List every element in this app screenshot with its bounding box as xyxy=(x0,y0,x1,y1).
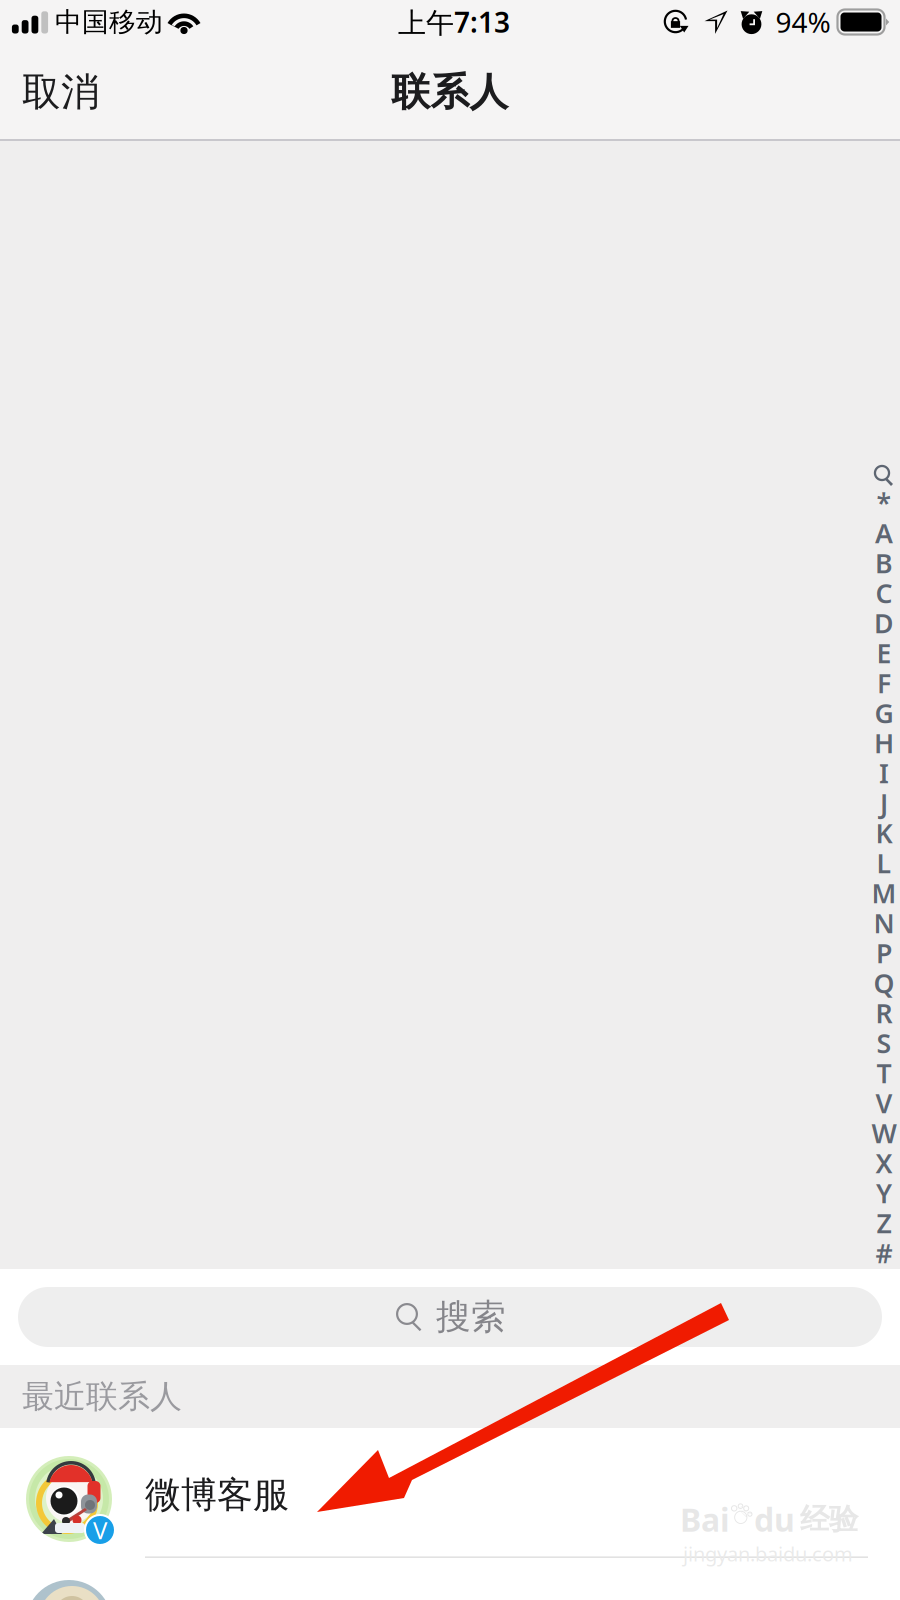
button[interactable]: Index xyxy=(871,141,900,1268)
staticText: P xyxy=(876,935,892,971)
staticText: V xyxy=(93,1514,107,1546)
staticText: 取消 xyxy=(22,68,100,116)
staticText: X xyxy=(875,1145,892,1181)
staticText: du xyxy=(754,1498,795,1540)
staticText: M xyxy=(871,875,896,911)
staticText: N xyxy=(873,905,894,941)
button[interactable]: V xyxy=(0,1428,900,1558)
staticText: J xyxy=(880,785,888,821)
staticText: * xyxy=(876,485,891,521)
staticText: R xyxy=(875,995,892,1031)
staticText: T xyxy=(876,1055,891,1091)
staticText: F xyxy=(877,665,891,701)
staticText: G xyxy=(874,695,893,731)
staticText: Z xyxy=(876,1205,891,1241)
button[interactable]: 取消 xyxy=(0,54,122,130)
staticText: 94% xyxy=(775,3,830,41)
staticText: K xyxy=(875,815,892,851)
staticText: # xyxy=(875,1235,892,1271)
button[interactable] xyxy=(0,1558,900,1600)
staticText: Bai xyxy=(680,1498,730,1540)
staticText: D xyxy=(874,605,894,641)
staticText: I xyxy=(879,755,889,791)
staticText: 微博客服 xyxy=(145,1473,289,1517)
staticText: E xyxy=(876,635,891,671)
staticText: H xyxy=(874,725,894,761)
staticText: 最近联系人 xyxy=(22,1377,182,1416)
staticText: Y xyxy=(876,1175,892,1211)
staticText: C xyxy=(875,575,892,611)
staticText: V xyxy=(875,1085,892,1121)
staticText: B xyxy=(875,545,893,581)
staticText: Q xyxy=(873,965,894,1001)
staticText: jingyan.baidu.com xyxy=(683,1540,853,1567)
staticText: 经验 xyxy=(800,1501,858,1537)
staticText: W xyxy=(871,1115,896,1151)
staticText: 中国移动 xyxy=(55,6,163,38)
button[interactable]: 搜索 xyxy=(18,1287,882,1347)
staticText: S xyxy=(876,1025,891,1061)
staticText: A xyxy=(875,515,893,551)
staticText: 搜索 xyxy=(436,1296,506,1338)
staticText: L xyxy=(876,845,891,881)
staticText: 联系人 xyxy=(391,68,508,116)
staticText: 上午7:13 xyxy=(398,3,510,41)
